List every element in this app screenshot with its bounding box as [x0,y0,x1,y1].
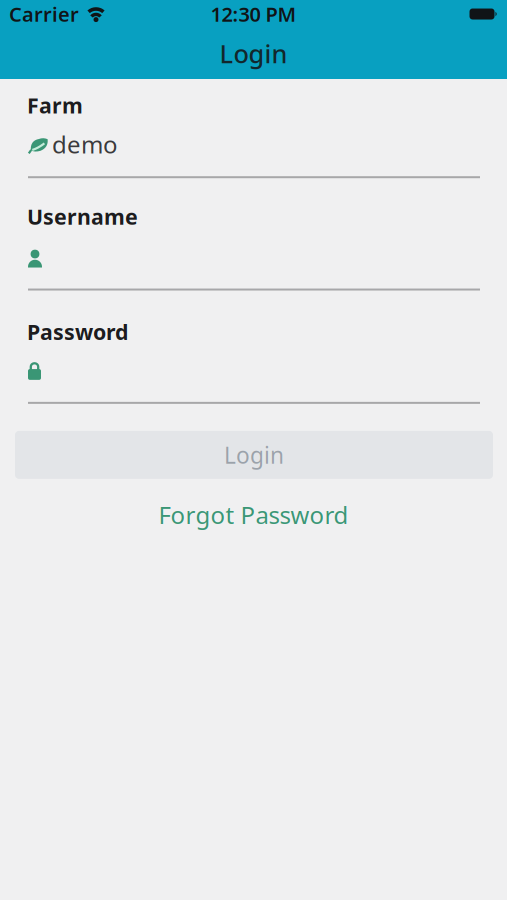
button[interactable]: Forgot Password [0,499,507,531]
staticText: Carrier [9,1,79,27]
staticText: Forgot Password [158,499,348,531]
staticText: Farm [27,91,83,119]
button[interactable]: Farm text field [0,119,507,178]
staticText: 12:30 PM [210,1,296,27]
staticText: Username [27,202,138,230]
button[interactable]: Username text field [0,230,507,290]
staticText: Login [224,440,284,470]
staticText: demo [52,128,118,160]
staticText: Password [27,317,128,346]
button[interactable]: Login [0,431,507,479]
button[interactable]: Password text field [0,346,507,404]
staticText: Login [219,37,287,70]
